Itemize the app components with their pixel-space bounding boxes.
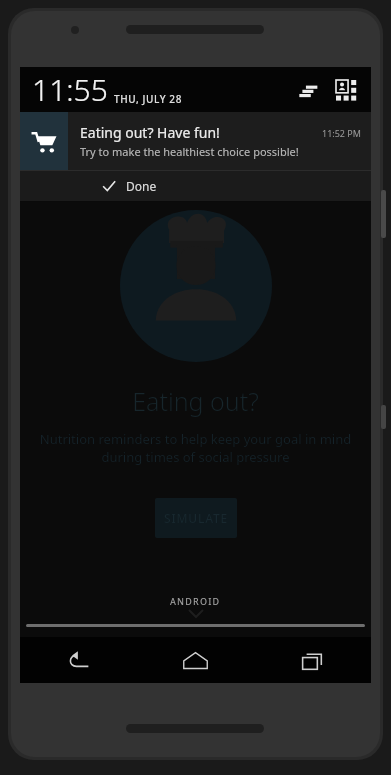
staticText: 11:55 (32, 69, 108, 110)
staticText: THU, JULY 28 (114, 92, 183, 106)
staticText: Eating out? (132, 384, 259, 418)
button[interactable]: Home (137, 637, 254, 683)
button[interactable]: Eating out? Have fun! (20, 112, 371, 170)
staticText: Done (126, 178, 157, 194)
button[interactable]: Done (20, 171, 371, 201)
staticText: Nutrition reminders to help keep your go… (36, 430, 355, 466)
staticText: SIMULATE (164, 510, 228, 526)
button[interactable]: Recent apps (254, 637, 371, 683)
staticText: ANDROID (170, 595, 221, 607)
button[interactable]: Back (20, 637, 137, 683)
staticText: Eating out? Have fun! (80, 123, 220, 142)
staticText: Try to make the healthiest choice possib… (80, 144, 299, 159)
staticText: 11:52 PM (322, 127, 361, 139)
